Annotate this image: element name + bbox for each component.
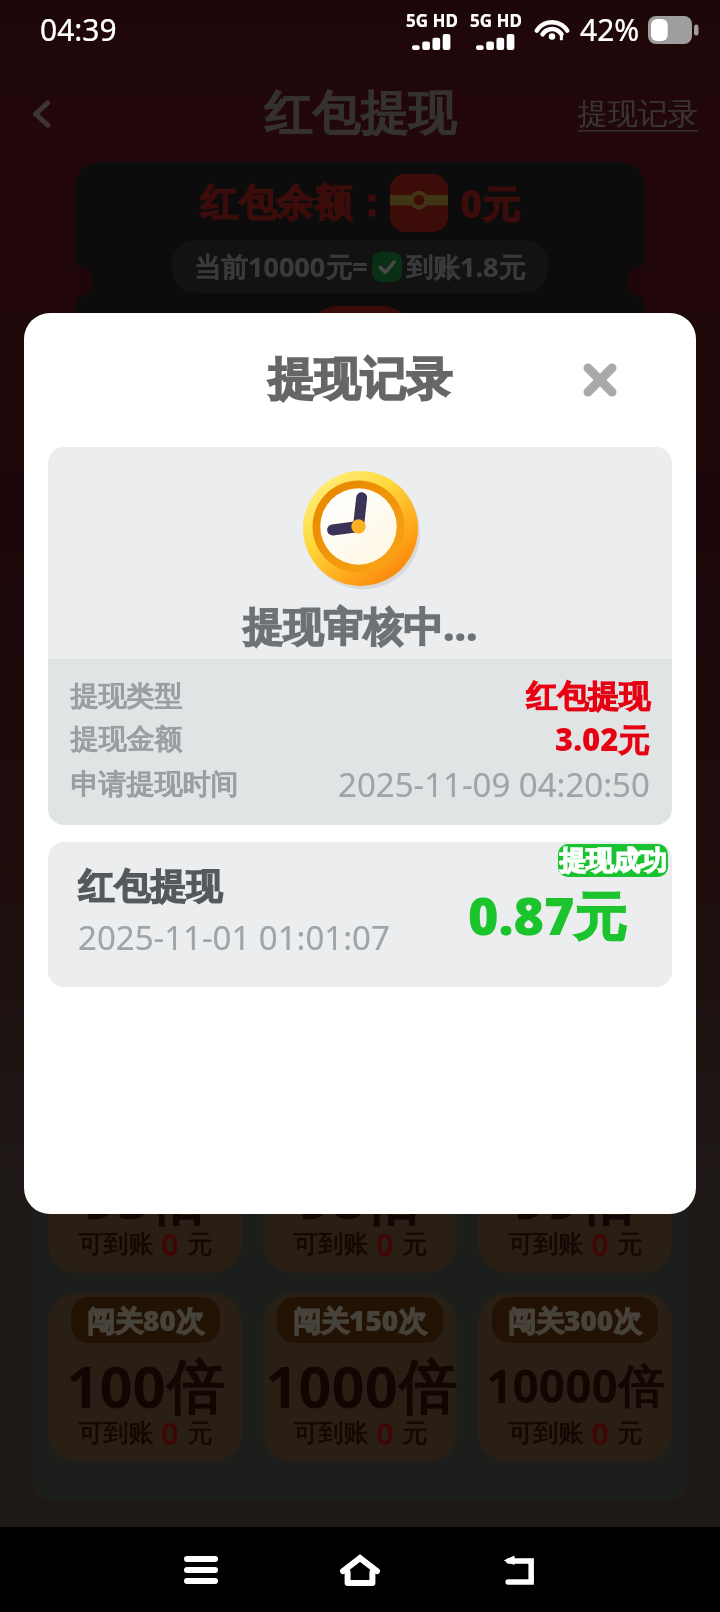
staticText: 15倍: [513, 590, 638, 669]
staticText: 0: [153, 845, 187, 887]
button[interactable]: 20倍: [48, 726, 242, 895]
staticText: 当前10000元=: [194, 248, 368, 285]
staticText: 元: [617, 662, 642, 693]
staticText: 可到账: [293, 1229, 368, 1260]
staticText: 0: [153, 656, 187, 698]
staticText: 可到账: [508, 1229, 583, 1260]
button[interactable]: 98倍: [263, 1104, 457, 1273]
staticText: 闯关80次: [87, 1301, 204, 1339]
staticText: 30倍: [298, 779, 423, 858]
button[interactable]: 提现审核中...: [48, 447, 672, 825]
staticText: 元: [402, 1418, 427, 1449]
staticText: 元: [187, 1229, 212, 1260]
staticText: 98倍: [298, 1157, 423, 1236]
staticText: 0元: [460, 177, 521, 229]
staticText: 元: [617, 1229, 642, 1260]
button[interactable]: 60倍: [48, 915, 242, 1084]
staticText: 红包提现: [526, 677, 650, 716]
staticText: 提现记录: [268, 351, 452, 409]
staticText: 0: [583, 656, 617, 698]
staticText: 可到账: [78, 1229, 153, 1260]
staticText: 可到账: [78, 1418, 153, 1449]
staticText: 60倍: [83, 968, 208, 1047]
staticText: 10000倍: [486, 1354, 664, 1417]
button[interactable]: 99倍: [478, 1104, 672, 1273]
staticText: 95倍: [83, 1157, 208, 1236]
staticText: 5G HD: [406, 9, 458, 32]
button[interactable]: 95倍: [48, 1104, 242, 1273]
staticText: 0: [583, 1412, 617, 1454]
staticText: 元: [617, 1418, 642, 1449]
staticText: 90倍: [513, 968, 638, 1047]
staticText: 申请提现时间: [70, 767, 238, 802]
staticText: 闯关50次: [87, 923, 204, 961]
staticText: 2025-11-01 01:01:07: [78, 915, 390, 960]
staticText: 可到账: [78, 662, 153, 693]
staticText: 0: [583, 845, 617, 887]
staticText: 1000倍: [265, 1346, 456, 1425]
button[interactable]: Home: [330, 1540, 390, 1600]
staticText: 3.02元: [555, 718, 650, 760]
button[interactable]: Back: [14, 86, 70, 142]
staticText: 70倍: [298, 968, 423, 1047]
button[interactable]: 15倍: [478, 537, 672, 706]
button[interactable]: 提现记录: [578, 95, 698, 133]
staticText: 99倍: [513, 1157, 638, 1236]
staticText: 5G HD: [470, 9, 522, 32]
staticText: 元: [617, 851, 642, 882]
staticText: 0: [368, 1412, 402, 1454]
staticText: 可到账: [293, 1418, 368, 1449]
staticText: 红包余额：: [200, 179, 390, 227]
button[interactable]: 红包提现: [48, 842, 672, 987]
button[interactable]: Recents: [171, 1540, 231, 1600]
staticText: 元: [187, 851, 212, 882]
button[interactable]: Back: [489, 1540, 549, 1600]
staticText: 提现金额: [70, 722, 182, 757]
button[interactable]: 5倍: [48, 537, 242, 706]
staticText: 闯关300次: [508, 1301, 642, 1339]
staticText: 0: [368, 1223, 402, 1265]
staticText: 红包提现: [264, 84, 456, 144]
button[interactable]: 1000倍: [263, 1293, 457, 1462]
staticText: 元: [187, 1418, 212, 1449]
staticText: 42%: [580, 9, 640, 50]
button[interactable]: Close: [568, 348, 632, 412]
button[interactable]: 30倍: [263, 726, 457, 895]
staticText: 闯关60次: [302, 923, 419, 961]
staticText: 50倍: [513, 779, 638, 858]
button[interactable]: 70倍: [263, 915, 457, 1084]
staticText: 提现成功: [559, 844, 667, 877]
button[interactable]: 90倍: [478, 915, 672, 1084]
staticText: 闯关70次: [517, 923, 634, 961]
staticText: 2025-11-09 04:20:50: [338, 762, 650, 807]
button[interactable]: 100倍: [48, 1293, 242, 1462]
staticText: 可到账: [508, 1418, 583, 1449]
button[interactable]: 10000倍: [478, 1293, 672, 1462]
staticText: 红包提现: [78, 864, 222, 909]
button[interactable]: 50倍: [478, 726, 672, 895]
staticText: 100倍: [66, 1346, 224, 1425]
button[interactable]: 10倍: [263, 537, 457, 706]
staticText: 可到账: [508, 662, 583, 693]
staticText: 04:39: [40, 9, 117, 50]
staticText: 闯关40次: [517, 734, 634, 772]
staticText: 元: [402, 1229, 427, 1260]
